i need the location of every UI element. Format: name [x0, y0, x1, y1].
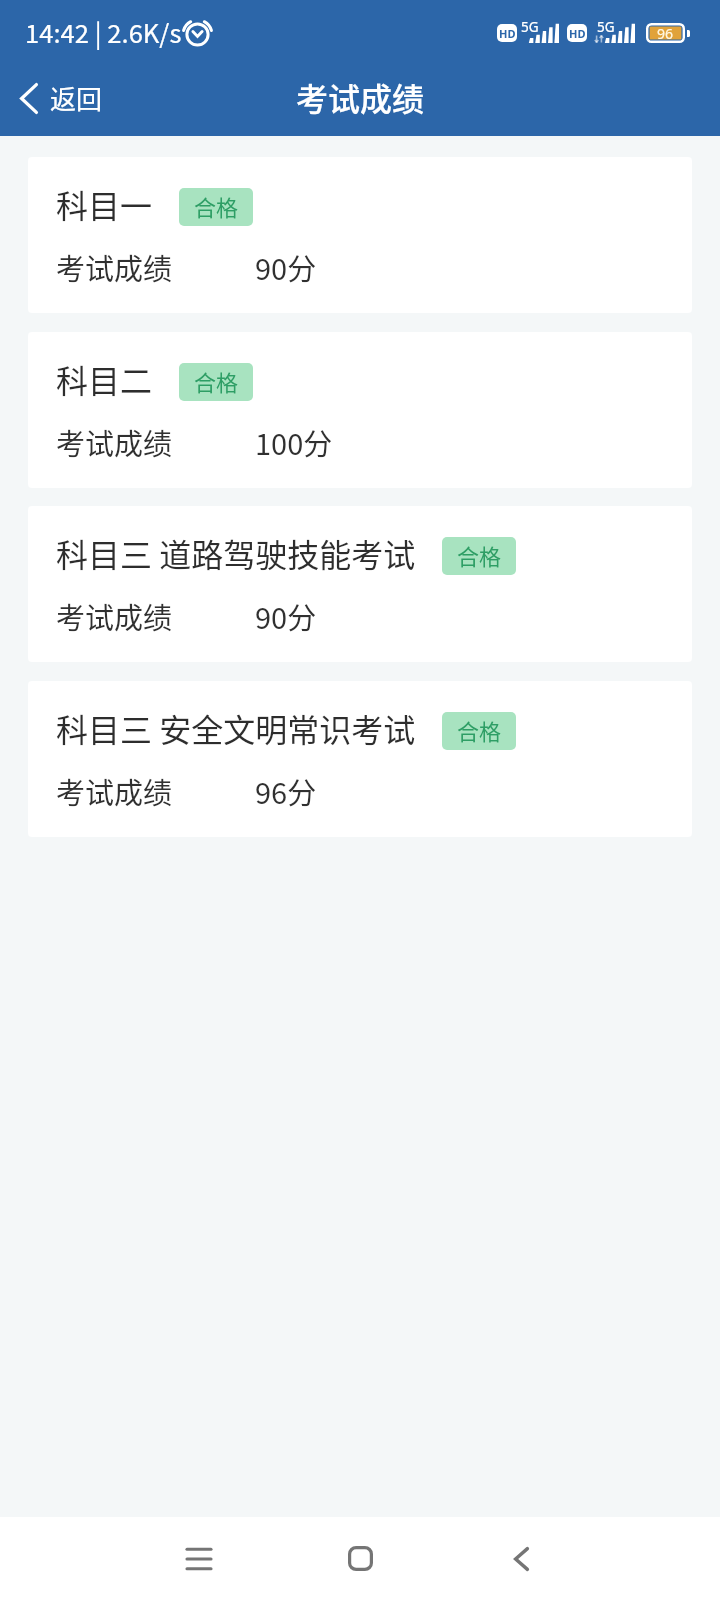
staticText: 科目三 道路驾驶技能考试 — [56, 530, 416, 576]
staticText: 考试成绩 — [56, 770, 173, 812]
button[interactable]: 返回 — [8, 73, 117, 123]
staticText: 考试成绩 — [56, 421, 173, 463]
button[interactable]: 科目三 安全文明常识考试 — [28, 681, 692, 837]
staticText: 96 — [657, 24, 674, 43]
staticText: 科目一 — [56, 181, 153, 227]
staticText: 14:42 | 2.6K/s — [25, 13, 182, 50]
staticText: 5G — [521, 18, 539, 36]
staticText: 100分 — [255, 421, 333, 463]
button[interactable]: Menu — [157, 1517, 240, 1600]
staticText: 返回 — [50, 79, 103, 117]
staticText: 96分 — [255, 770, 317, 812]
staticText: 考试成绩 — [56, 595, 173, 637]
staticText: HD — [499, 26, 516, 41]
button[interactable]: 科目三 道路驾驶技能考试 — [28, 506, 692, 662]
staticText: 合格 — [194, 190, 239, 222]
staticText: 合格 — [457, 539, 502, 571]
staticText: 考试成绩 — [56, 246, 173, 288]
button[interactable]: Back — [480, 1517, 563, 1600]
staticText: 合格 — [194, 365, 239, 397]
button[interactable]: Home — [319, 1517, 402, 1600]
staticText: HD — [569, 26, 586, 41]
staticText: 科目三 安全文明常识考试 — [56, 705, 416, 751]
staticText: 5G — [597, 18, 615, 36]
staticText: 科目二 — [56, 356, 153, 402]
button[interactable]: 科目一 — [28, 157, 692, 313]
staticText: 90分 — [255, 246, 317, 288]
staticText: 考试成绩 — [296, 74, 425, 120]
button[interactable]: 科目二 — [28, 332, 692, 488]
staticText: 90分 — [255, 595, 317, 637]
staticText: 合格 — [457, 714, 502, 746]
